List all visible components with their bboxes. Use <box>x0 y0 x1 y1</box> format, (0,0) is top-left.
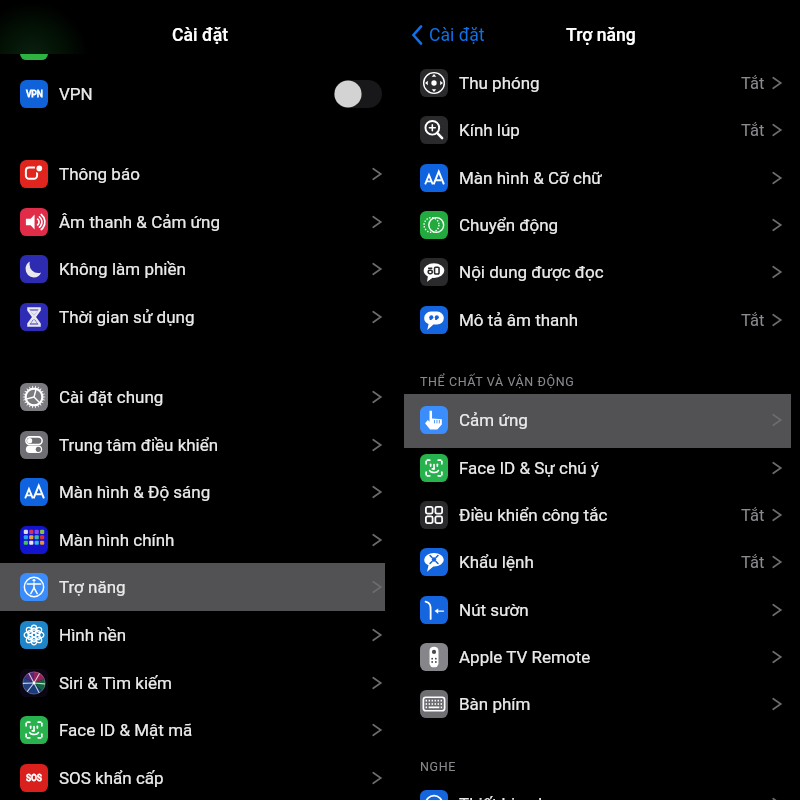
button[interactable]: Màn hình chính <box>0 516 400 564</box>
staticText: Màn hình & Độ sáng <box>59 482 211 502</box>
button[interactable]: Âm thanh & Cảm ứng <box>0 198 400 246</box>
button[interactable]: SOS <box>0 754 400 800</box>
button[interactable]: Màn hình & Cỡ chữ <box>400 154 800 202</box>
staticText: Tắt <box>741 506 765 525</box>
button[interactable]: Thu phóng <box>400 59 800 107</box>
staticText: Màn hình & Cỡ chữ <box>459 168 602 188</box>
button[interactable]: Điều khiển công tắc <box>400 491 800 539</box>
staticText: Cảm ứng <box>459 410 528 430</box>
button[interactable]: Khẩu lệnh <box>400 538 800 586</box>
button[interactable]: Thiết bị nghe <box>400 780 800 800</box>
staticText: Trợ năng <box>59 577 126 597</box>
staticText: Face ID & Mật mã <box>59 720 193 740</box>
staticText: Trung tâm điều khiển <box>59 435 219 455</box>
button[interactable]: Siri & Tìm kiếm <box>0 659 400 707</box>
staticText: Bàn phím <box>459 694 531 714</box>
staticText: Thu phóng <box>459 73 540 93</box>
button[interactable]: Không làm phiền <box>0 245 400 293</box>
button[interactable]: Back to Cài đặt <box>407 0 489 70</box>
button[interactable]: Trung tâm điều khiển <box>0 421 400 469</box>
staticText: Hình nền <box>59 625 127 645</box>
staticText: Tắt <box>741 311 765 330</box>
staticText: SOS <box>26 773 42 783</box>
staticText: Cài đặt chung <box>59 387 164 407</box>
staticText: SOS khẩn cấp <box>59 768 164 788</box>
button[interactable]: Hình nền <box>0 611 400 659</box>
button[interactable]: Bàn phím <box>400 680 800 728</box>
staticText: Nút sườn <box>459 600 529 620</box>
staticText: Thông báo <box>59 164 140 184</box>
staticText: Cài đặt <box>429 25 485 46</box>
button[interactable]: Face ID & Sự chú ý <box>400 444 800 492</box>
staticText: Khẩu lệnh <box>459 552 534 572</box>
staticText: Màn hình chính <box>59 530 175 550</box>
staticText: Chuyển động <box>459 215 559 235</box>
staticText: Cài đặt <box>172 25 229 46</box>
button[interactable]: Thông báo <box>0 150 400 198</box>
button[interactable]: Nội dung được đọc <box>400 248 800 296</box>
staticText: Điều khiển công tắc <box>459 505 608 525</box>
staticText: Kính lúp <box>459 120 520 140</box>
staticText: Tắt <box>741 121 765 140</box>
button[interactable]: Chuyển động <box>400 201 800 249</box>
staticText: Mô tả âm thanh <box>459 310 579 330</box>
staticText: Tắt <box>741 553 765 572</box>
staticText: Apple TV Remote <box>459 647 591 667</box>
button[interactable]: Mô tả âm thanh <box>400 296 800 344</box>
button[interactable]: Nút sườn <box>400 586 800 634</box>
staticText: Tắt <box>741 74 765 93</box>
staticText: Trợ năng <box>566 25 636 46</box>
button[interactable]: Cảm ứng <box>400 396 800 444</box>
staticText: Thời gian sử dụng <box>59 307 195 327</box>
staticText: VPN <box>26 89 43 99</box>
staticText: Nội dung được đọc <box>459 262 604 282</box>
staticText: Face ID & Sự chú ý <box>459 458 600 478</box>
button[interactable]: Cài đặt chung <box>0 373 400 421</box>
button[interactable]: VPN <box>0 70 400 118</box>
button[interactable]: Apple TV Remote <box>400 633 800 681</box>
staticText: VPN <box>59 84 93 104</box>
staticText: Siri & Tìm kiếm <box>59 673 172 693</box>
button[interactable]: Face ID & Mật mã <box>0 706 400 754</box>
staticText: Thiết bị nghe <box>459 794 557 800</box>
staticText: Không làm phiền <box>59 259 186 279</box>
button[interactable]: Thời gian sử dụng <box>0 293 400 341</box>
button[interactable]: Màn hình & Độ sáng <box>0 468 400 516</box>
staticText: Âm thanh & Cảm ứng <box>59 212 221 232</box>
button[interactable]: Trợ năng <box>0 563 400 611</box>
staticText: THỂ CHẤT VÀ VẬN ĐỘNG <box>420 374 575 389</box>
button[interactable]: Kính lúp <box>400 106 800 154</box>
staticText: NGHE <box>420 759 456 774</box>
